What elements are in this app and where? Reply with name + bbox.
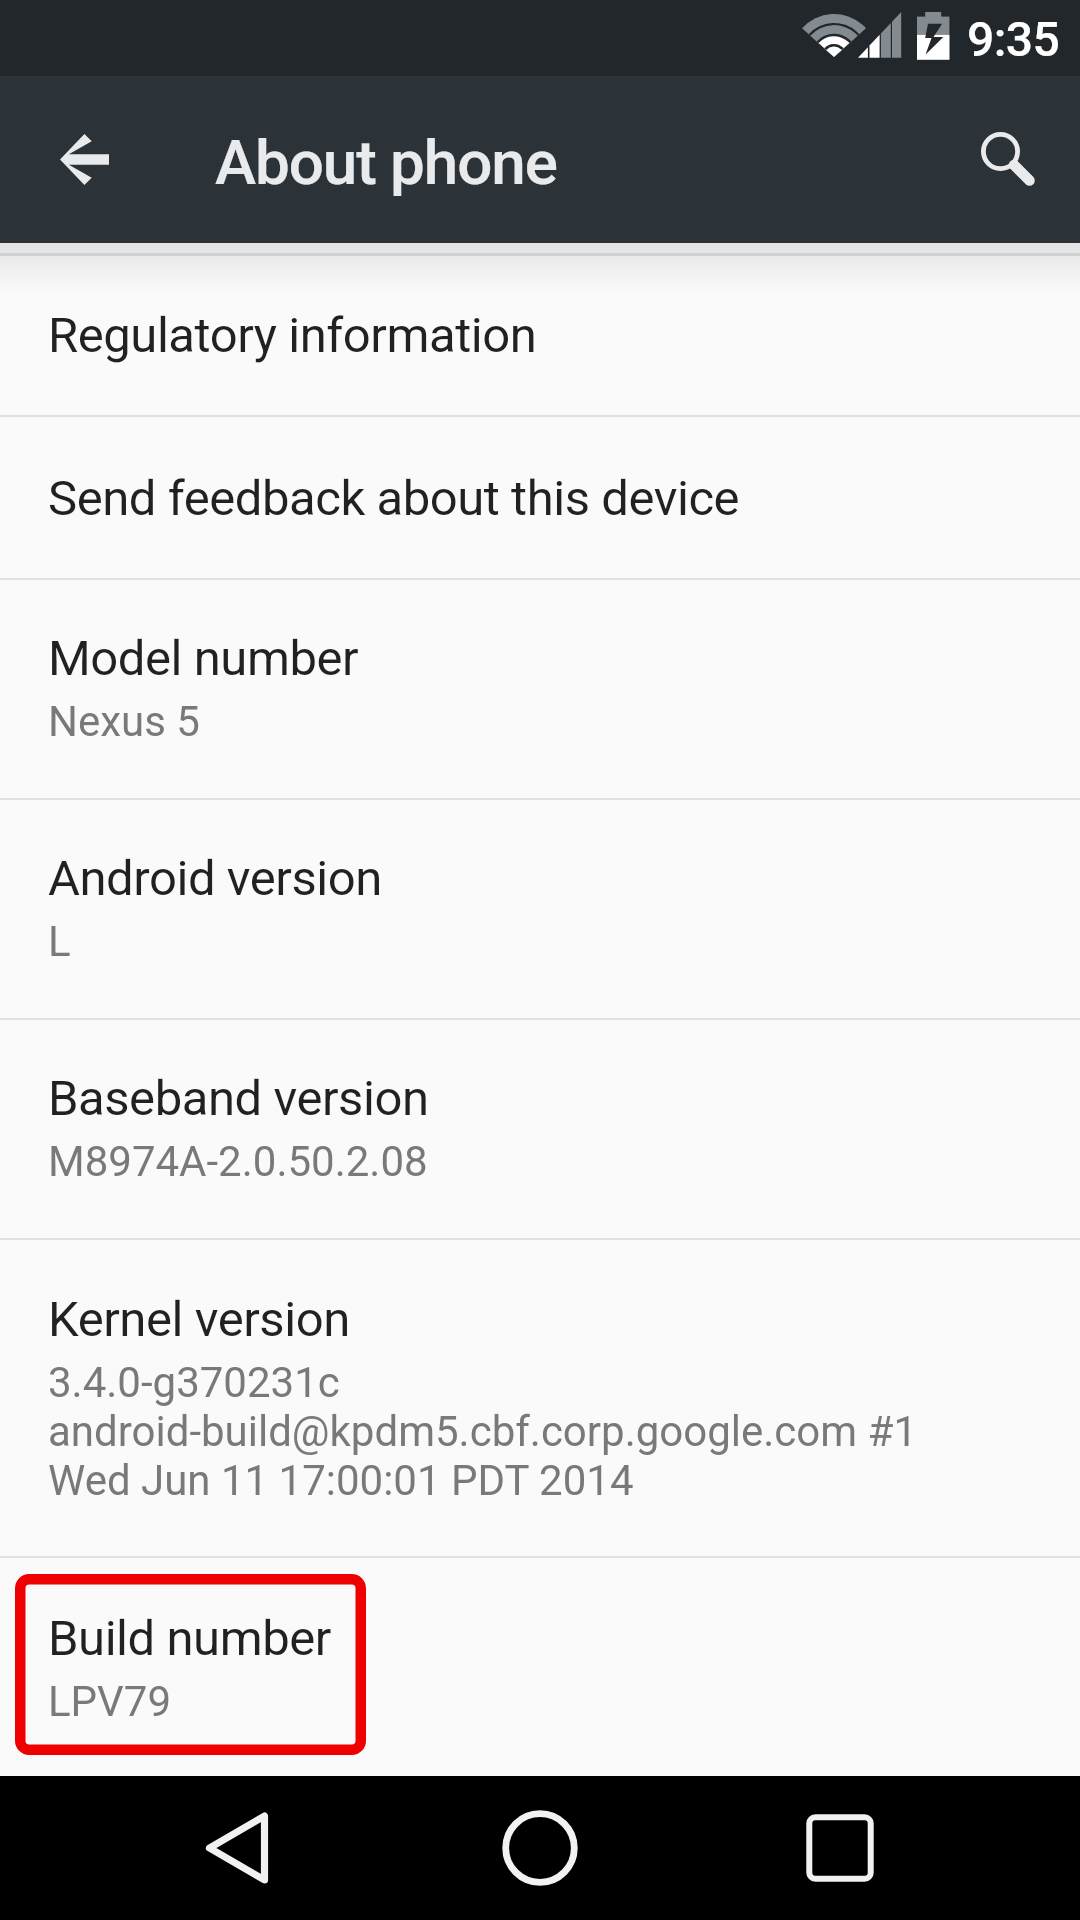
button[interactable]: Home xyxy=(468,1776,612,1920)
button[interactable]: Recent apps xyxy=(768,1776,912,1920)
staticText: About phone xyxy=(215,126,557,199)
button[interactable]: Android version xyxy=(0,800,1080,1018)
staticText: 9:35 xyxy=(967,11,1060,67)
staticText: Kernel version xyxy=(48,1291,350,1348)
button[interactable]: Send feedback about this device xyxy=(0,417,1080,578)
staticText: Build number xyxy=(48,1610,331,1667)
button[interactable]: Build number xyxy=(0,1558,1080,1776)
staticText: 3.4.0-g370231c android-build@kpdm5.cbf.c… xyxy=(48,1358,917,1505)
staticText: L xyxy=(48,917,71,966)
staticText: M8974A-2.0.50.2.08 xyxy=(48,1137,428,1186)
button[interactable]: Search xyxy=(948,94,1080,226)
button[interactable]: Back xyxy=(175,1776,319,1920)
staticText: Baseband version xyxy=(48,1070,429,1127)
staticText: Nexus 5 xyxy=(48,697,200,746)
button[interactable]: Baseband version xyxy=(0,1020,1080,1238)
staticText: Model number xyxy=(48,630,359,687)
button[interactable]: Model number xyxy=(0,580,1080,798)
button[interactable]: Kernel version xyxy=(0,1240,1080,1556)
button[interactable]: Regulatory information xyxy=(0,243,1080,415)
button[interactable]: Navigate up xyxy=(0,94,132,226)
staticText: LPV79 xyxy=(48,1677,172,1726)
staticText: Regulatory information xyxy=(48,307,537,364)
staticText: Send feedback about this device xyxy=(48,470,740,527)
staticText: Android version xyxy=(48,850,382,907)
